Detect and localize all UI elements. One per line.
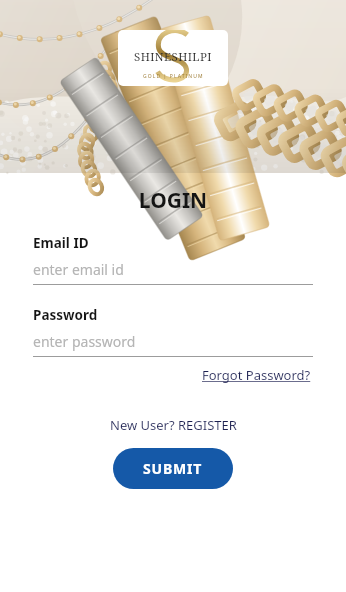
staticText: Email ID (33, 234, 89, 252)
staticText: enter password (33, 332, 136, 351)
staticText: SUBMIT (143, 459, 203, 478)
button[interactable]: SUBMIT (113, 448, 233, 489)
staticText: New User? REGISTER (110, 416, 237, 434)
staticText: Password (33, 306, 98, 324)
staticText: Forgot Password? (202, 366, 311, 384)
button[interactable]: Forgot Password? (200, 364, 313, 386)
staticText: enter email id (33, 260, 124, 279)
button[interactable]: New User? REGISTER (102, 413, 245, 437)
staticText: SHINESHILPI (134, 49, 212, 65)
button[interactable]: enter password (33, 332, 313, 357)
button[interactable]: enter email id (33, 260, 313, 285)
staticText: GOLD | PLATINUM (143, 73, 204, 80)
staticText: LOGIN (0, 186, 346, 215)
